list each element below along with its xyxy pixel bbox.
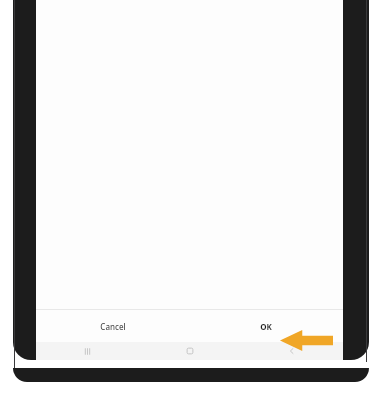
button[interactable]: Cancel (36, 310, 189, 342)
staticText: Cancel (100, 321, 126, 332)
button[interactable]: OK (189, 310, 343, 342)
staticText: OK (260, 321, 272, 332)
button[interactable]: Back (241, 342, 343, 360)
button[interactable]: Recent apps (36, 342, 139, 360)
other: Arrow pointing to OK (280, 330, 333, 351)
button[interactable]: Home (139, 342, 241, 360)
